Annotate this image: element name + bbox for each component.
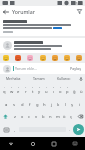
button[interactable]: n <box>47 110 54 123</box>
staticText: j <box>51 102 53 108</box>
staticText: q <box>3 89 6 95</box>
button[interactable]: 7 <box>43 84 50 97</box>
button[interactable]: Backspace <box>75 110 85 123</box>
button[interactable]: 1 <box>0 84 8 97</box>
staticText: s <box>13 102 16 108</box>
button[interactable]: Numbers and symbols <box>1 123 11 136</box>
button[interactable]: Kullanıcı <box>51 74 76 83</box>
staticText: p <box>66 89 69 95</box>
button[interactable]: z <box>11 110 19 123</box>
button[interactable]: blossom <box>26 54 34 62</box>
staticText: b <box>42 114 45 120</box>
staticText: z <box>14 114 16 120</box>
staticText: g <box>36 102 39 108</box>
staticText: 1 <box>4 86 6 89</box>
button[interactable]: Send <box>73 124 84 135</box>
staticText: r <box>25 89 27 95</box>
button[interactable]: think <box>75 54 83 62</box>
button[interactable]: 0 <box>64 84 71 97</box>
staticText: 15:03 <box>74 1 83 6</box>
staticText: o <box>59 89 62 95</box>
button[interactable]: k <box>55 97 62 110</box>
button[interactable]: Voice input <box>76 74 85 83</box>
button[interactable]: 5 <box>29 84 36 97</box>
button[interactable] <box>0 17 85 36</box>
button[interactable]: ü <box>78 84 85 97</box>
button[interactable]: 8 <box>50 84 57 97</box>
staticText: h <box>43 102 46 108</box>
staticText: 5 <box>32 86 34 89</box>
staticText: w <box>10 89 14 95</box>
staticText: 0 <box>67 86 69 89</box>
button[interactable]: Home <box>22 137 43 150</box>
button[interactable]: Tamam <box>26 74 51 83</box>
button[interactable]: , <box>11 123 18 136</box>
staticText: d <box>21 102 24 108</box>
button[interactable]: a <box>2 97 10 110</box>
button[interactable]: 9 <box>57 84 64 97</box>
staticText: x <box>21 114 24 120</box>
button[interactable]: grin <box>39 54 47 62</box>
staticText: c <box>28 114 31 120</box>
staticText: i <box>79 102 81 108</box>
button[interactable]: 6 <box>36 84 43 97</box>
button[interactable]: Shift <box>0 110 11 123</box>
staticText: . <box>69 127 71 133</box>
staticText: 9 <box>60 86 62 89</box>
button[interactable]: Recent apps <box>43 137 64 150</box>
button[interactable]: 4 <box>22 84 29 97</box>
button[interactable]: ç <box>68 110 75 123</box>
staticText: Tamam <box>33 76 45 81</box>
staticText: y <box>38 89 41 95</box>
staticText: v <box>35 114 38 120</box>
button[interactable]: Merhaba <box>0 74 26 83</box>
button[interactable]: j <box>48 97 55 110</box>
button[interactable]: Paylaş <box>69 65 82 72</box>
button[interactable]: . <box>67 123 73 136</box>
button[interactable]: 2 <box>8 84 15 97</box>
button[interactable]: ö <box>61 110 68 123</box>
button[interactable]: smile <box>2 54 10 62</box>
staticText: 8 <box>53 86 55 89</box>
staticText: ş <box>71 102 74 108</box>
button[interactable]: l <box>62 97 69 110</box>
staticText: 7 <box>46 86 48 89</box>
button[interactable]: v <box>33 110 40 123</box>
button[interactable]: Switch keyboard <box>64 137 85 150</box>
button[interactable]: s <box>10 97 18 110</box>
staticText: 3 <box>18 86 20 89</box>
staticText: ü <box>80 89 83 95</box>
button[interactable]: Back <box>0 6 11 17</box>
staticText: a <box>5 102 8 108</box>
staticText: f <box>29 102 31 108</box>
button[interactable]: m <box>54 110 61 123</box>
staticText: t <box>32 89 34 95</box>
button[interactable]: h <box>41 97 48 110</box>
button[interactable]: b <box>40 110 47 123</box>
button[interactable]: ş <box>69 97 76 110</box>
button[interactable]: 3 <box>15 84 22 97</box>
staticText: ğ <box>73 89 76 95</box>
button[interactable]: wink <box>63 54 71 62</box>
button[interactable]: i <box>76 97 83 110</box>
staticText: m <box>56 114 60 120</box>
staticText: u <box>45 89 48 95</box>
staticText: n <box>49 114 52 120</box>
staticText: Yorum ekle... <box>15 66 37 71</box>
button[interactable]: ğ <box>71 84 78 97</box>
button[interactable]: Filter <box>74 6 85 17</box>
button[interactable] <box>0 38 85 53</box>
button[interactable]: fire <box>14 54 22 62</box>
button[interactable]: hug <box>51 54 59 62</box>
button[interactable]: x <box>19 110 26 123</box>
button[interactable]: Yorum ekle... <box>13 64 69 73</box>
staticText: Paylaş <box>70 66 81 71</box>
staticText: ı <box>53 89 55 95</box>
button[interactable]: Hide keyboard <box>0 137 22 150</box>
button[interactable]: c <box>26 110 33 123</box>
button[interactable]: f <box>26 97 34 110</box>
button[interactable]: g <box>34 97 41 110</box>
button[interactable]: d <box>18 97 26 110</box>
staticText: ö <box>63 114 66 120</box>
